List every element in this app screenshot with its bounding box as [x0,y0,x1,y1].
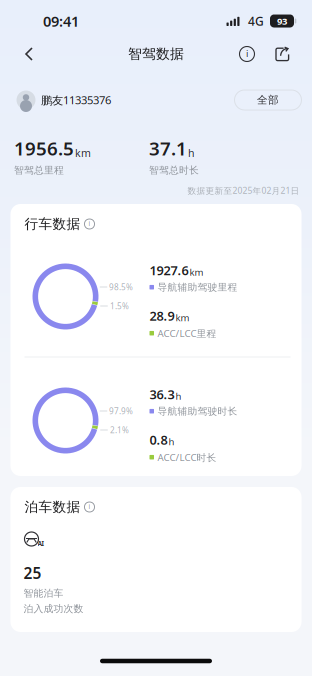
staticText: 数据更新至2025年02月21日 [187,185,299,196]
staticText: i [88,219,90,228]
staticText: 行车数据 [24,215,80,232]
staticText: 1956.5 [14,136,74,161]
staticText: 09:41 [43,11,79,31]
staticText: 36.3 [149,386,174,403]
staticText: 智驾总时长 [149,164,199,176]
staticText: 2.1% [110,424,129,436]
staticText: i [88,502,90,511]
staticText: 智驾总里程 [14,164,64,176]
staticText: i [246,47,248,60]
staticText: 97.9% [109,405,133,417]
staticText: km [175,311,189,324]
staticText: 37.1 [149,136,187,161]
button[interactable]: Back [12,37,46,71]
button[interactable]: 全部 [234,90,301,110]
staticText: ACC/LCC里程 [157,327,216,340]
button[interactable]: Information [232,39,262,69]
staticText: 1.5% [110,300,129,312]
staticText: km [75,146,91,160]
staticText: 4G [248,13,264,29]
button[interactable]: Share [267,39,297,69]
staticText: AI [37,539,44,548]
staticText: 全部 [257,93,279,107]
staticText: 泊车数据 [24,498,80,515]
staticText: ACC/LCC时长 [157,451,216,464]
staticText: 0.8 [149,431,167,449]
staticText: h [188,146,195,160]
staticText: km [189,265,203,279]
staticText: 智驾数据 [128,45,184,63]
staticText: 导航辅助驾驶里程 [157,281,237,293]
staticText: 93 [277,14,287,27]
staticText: 28.9 [149,307,174,325]
staticText: 智能泊车 [23,587,63,599]
staticText: 98.5% [109,281,133,293]
staticText: 泊入成功次数 [23,602,83,615]
staticText: h [175,389,181,403]
staticText: 鹏友11335376 [41,92,111,108]
staticText: h [168,435,174,448]
staticText: 导航辅助驾驶时长 [157,405,237,417]
staticText: 25 [23,562,41,583]
staticText: 1927.6 [149,262,188,279]
